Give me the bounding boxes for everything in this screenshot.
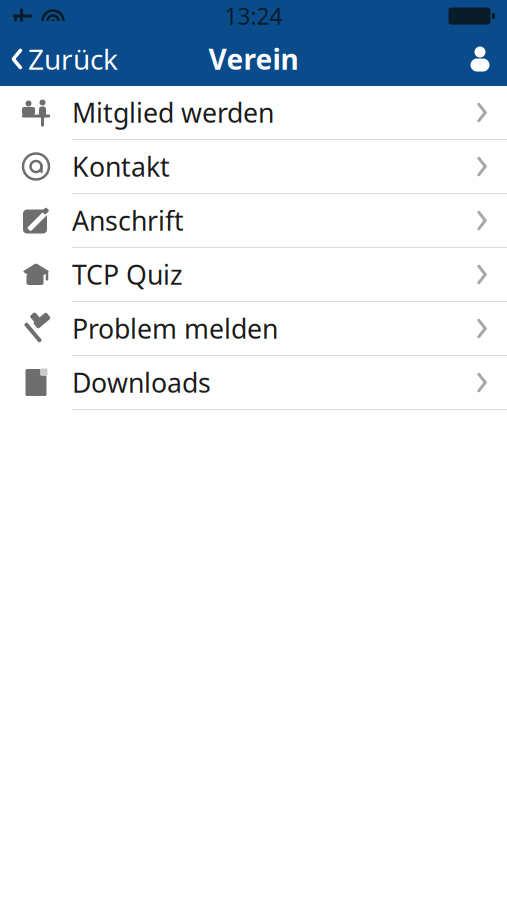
staticText: Downloads: [72, 365, 211, 400]
staticText: TCP Quiz: [72, 257, 183, 292]
button[interactable]: Anschrift: [0, 194, 507, 248]
button[interactable]: Kontakt: [0, 140, 507, 194]
staticText: 13:24: [224, 1, 282, 31]
button[interactable]: Downloads: [0, 356, 507, 410]
button[interactable]: TCP Quiz: [0, 248, 507, 302]
staticText: Mitglied werden: [72, 95, 274, 130]
button[interactable]: Problem melden: [0, 302, 507, 356]
staticText: Anschrift: [72, 203, 184, 238]
button[interactable]: Profil: [469, 40, 507, 78]
button[interactable]: Zurück: [0, 34, 118, 84]
staticText: Kontakt: [72, 149, 170, 184]
staticText: Zurück: [28, 40, 118, 78]
button[interactable]: Mitglied werden: [0, 86, 507, 140]
staticText: Verein: [208, 40, 298, 78]
staticText: Problem melden: [72, 311, 278, 346]
